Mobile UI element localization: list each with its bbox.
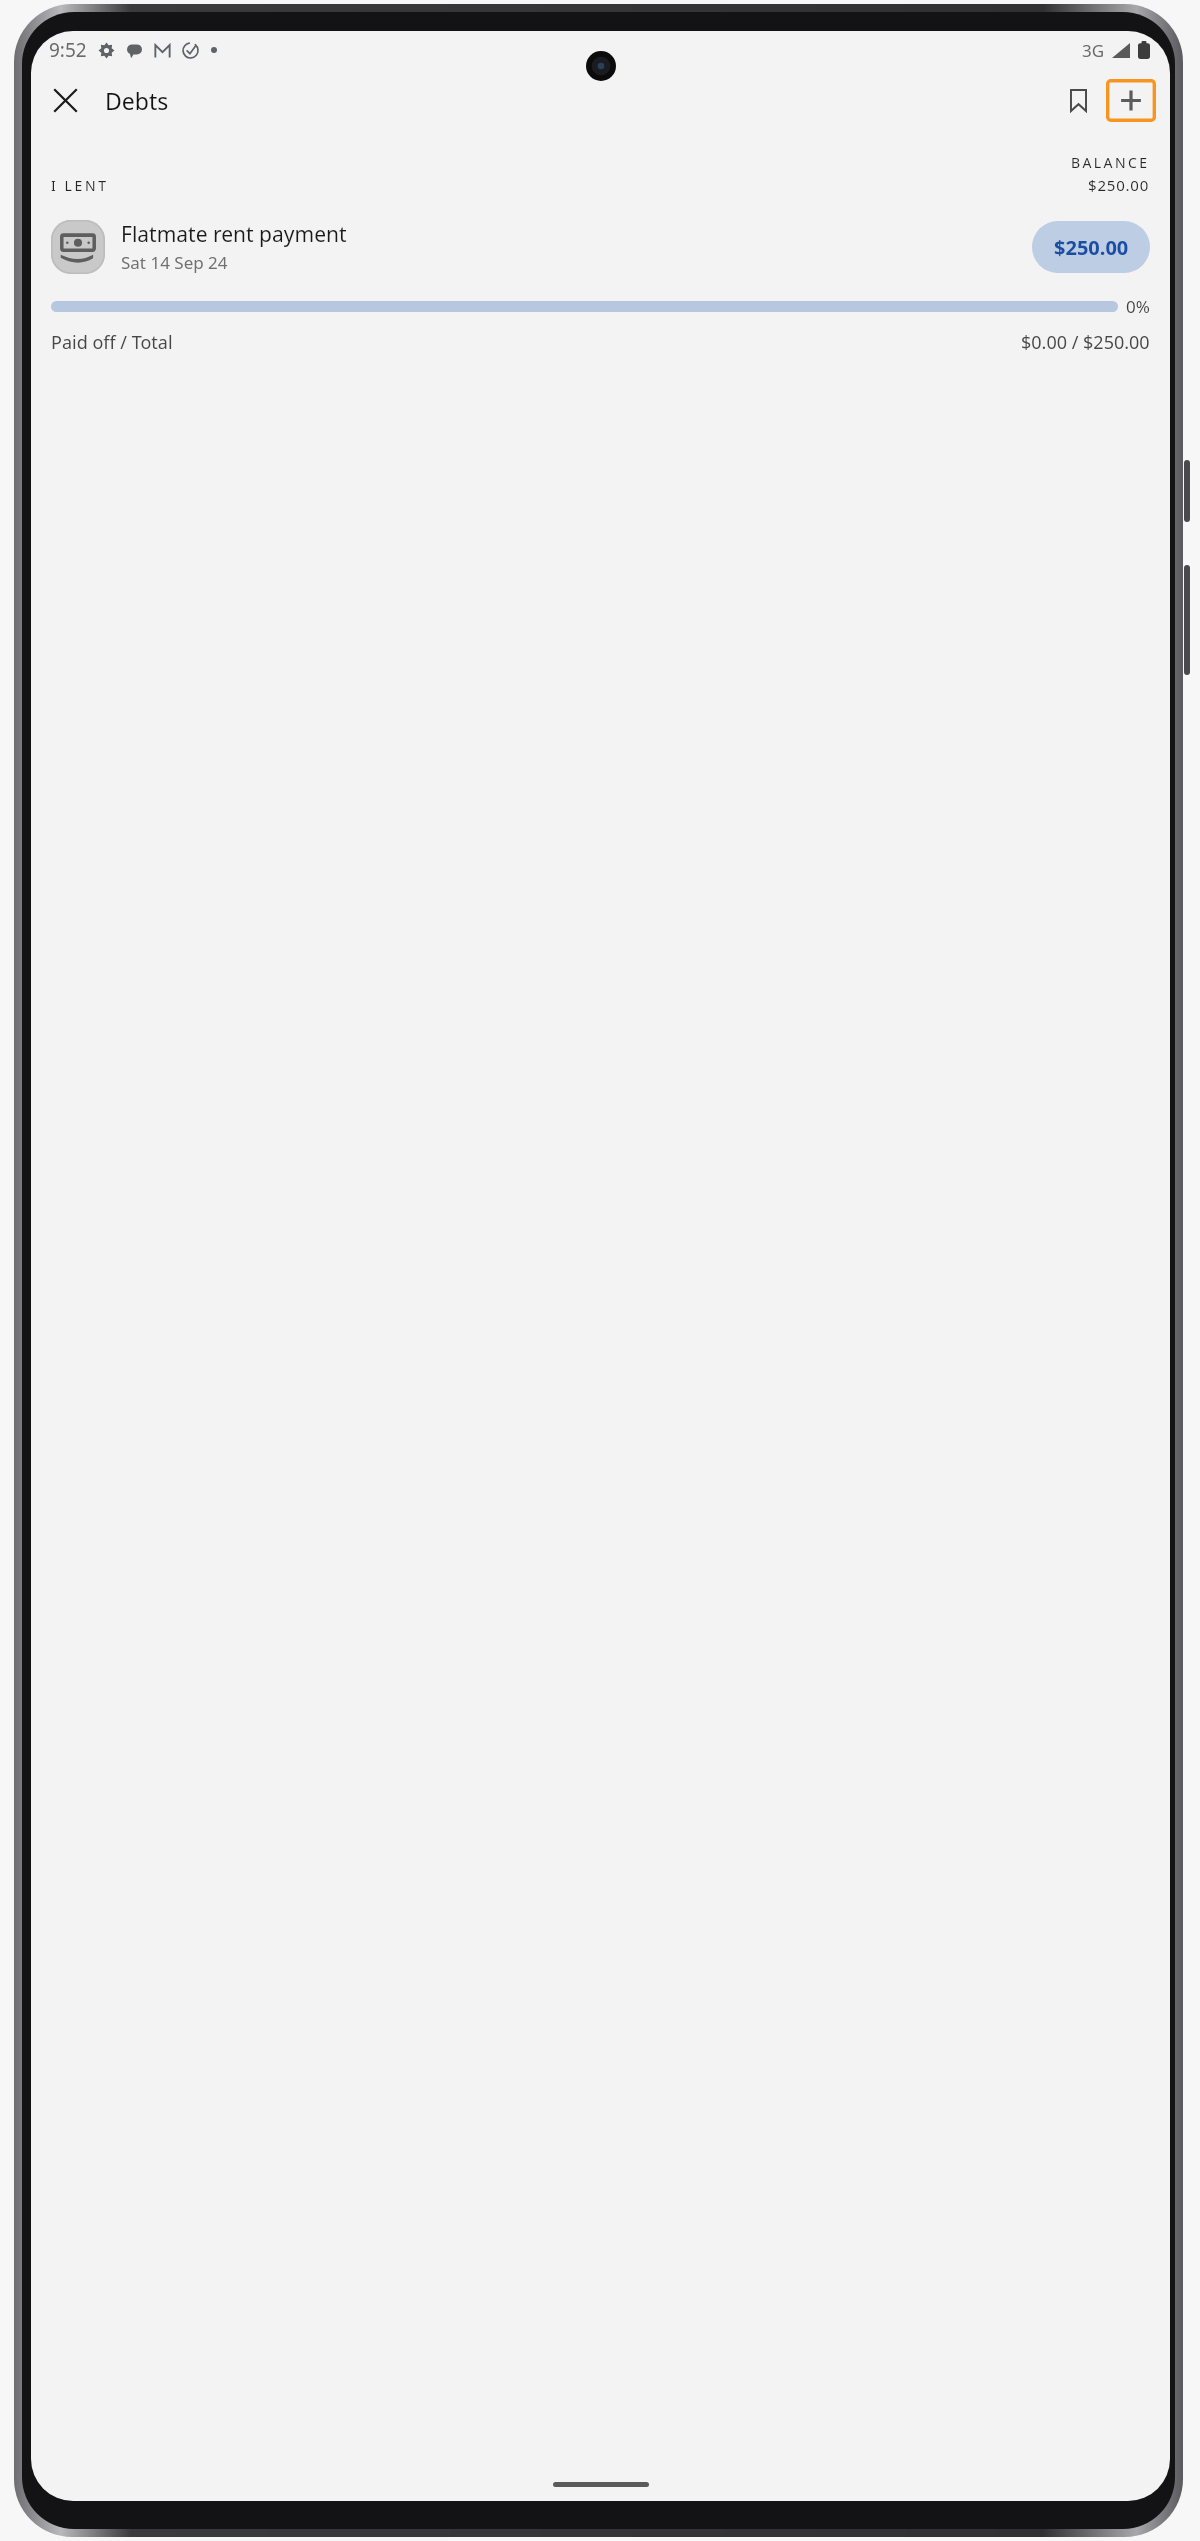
staticText: 9:52 bbox=[49, 37, 87, 63]
staticText: 0% bbox=[1126, 295, 1150, 318]
button[interactable]: Add debt bbox=[1106, 79, 1156, 122]
staticText: I LENT bbox=[51, 176, 109, 195]
staticText: $0.00 / $250.00 bbox=[1021, 330, 1150, 355]
button[interactable]: Flatmate rent payment bbox=[31, 211, 1170, 283]
button[interactable]: $250.00 bbox=[1032, 221, 1150, 273]
staticText: 3G bbox=[1082, 39, 1105, 62]
staticText: Paid off / Total bbox=[51, 330, 173, 355]
button[interactable]: Close bbox=[41, 76, 89, 124]
staticText: Debts bbox=[105, 85, 169, 116]
staticText: $250.00 bbox=[1088, 175, 1150, 195]
staticText: Sat 14 Sep 24 bbox=[121, 251, 228, 274]
staticText: $250.00 bbox=[1054, 234, 1129, 261]
staticText: BALANCE bbox=[1071, 153, 1150, 172]
button[interactable]: Bookmark bbox=[1054, 76, 1102, 124]
staticText: Flatmate rent payment bbox=[121, 220, 347, 249]
